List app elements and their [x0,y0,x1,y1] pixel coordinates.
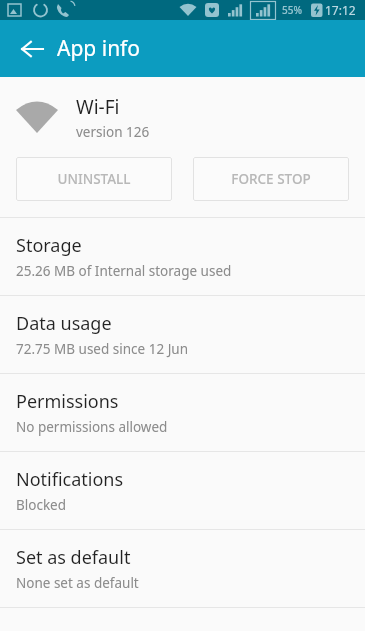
staticText: 25.26 MB of Internal storage used [16,262,232,280]
button[interactable]: Set as default [0,530,365,607]
staticText: Set as default [16,545,131,570]
staticText: Notifications [16,467,124,492]
staticText: No permissions allowed [16,418,168,436]
staticText: None set as default [16,574,139,592]
staticText: 72.75 MB used since 12 Jun [16,340,189,358]
staticText: Wi-Fi [76,94,120,120]
staticText: 17:12 [325,2,356,18]
button[interactable]: Storage [0,218,365,295]
button[interactable]: UNINSTALL [16,157,172,201]
button[interactable]: Data usage [0,296,365,373]
staticText: Permissions [16,389,119,414]
staticText: Blocked [16,496,67,514]
staticText: UNINSTALL [57,170,131,188]
staticText: App info [57,34,141,63]
button[interactable]: Back [8,25,56,73]
staticText: Storage [16,233,82,258]
button[interactable]: Permissions [0,374,365,451]
staticText: version 126 [76,123,150,141]
staticText: FORCE STOP [231,170,311,188]
staticText: Data usage [16,311,112,336]
button[interactable]: FORCE STOP [193,157,349,201]
button[interactable]: Notifications [0,452,365,529]
staticText: 55% [282,3,302,17]
